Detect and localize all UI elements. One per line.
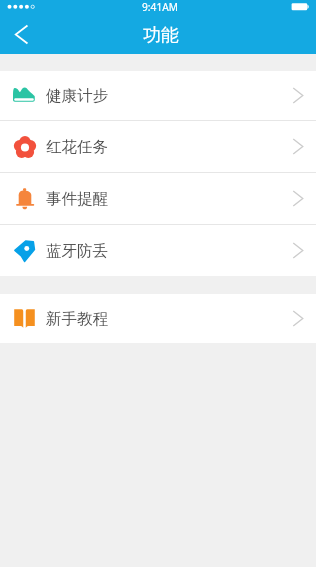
button[interactable]: 蓝牙防丢 (0, 225, 316, 276)
staticText: 事件提醒 (46, 189, 108, 209)
staticText: 蓝牙防丢 (46, 241, 108, 261)
button[interactable]: 红花任务 (0, 121, 316, 172)
staticText: 健康计步 (46, 86, 108, 106)
staticText: 红花任务 (46, 137, 108, 157)
button[interactable]: 新手教程 (0, 294, 316, 343)
button[interactable]: 事件提醒 (0, 173, 316, 224)
button[interactable]: Back (0, 14, 39, 54)
staticText: 功能 (143, 24, 179, 47)
staticText: 9:41AM (142, 0, 178, 14)
button[interactable]: 健康计步 (0, 71, 316, 120)
staticText: 新手教程 (46, 309, 108, 329)
